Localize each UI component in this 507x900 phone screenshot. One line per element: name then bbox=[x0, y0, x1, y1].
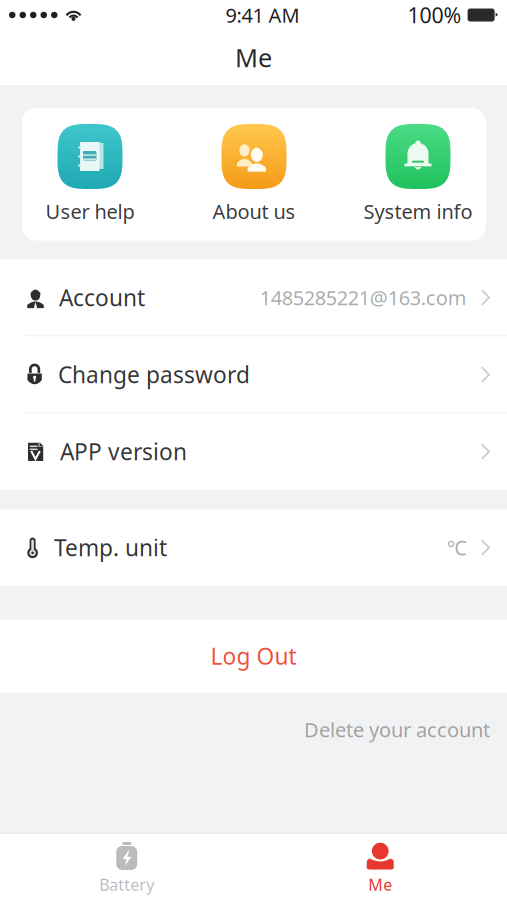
staticText: 9:41 AM bbox=[225, 2, 299, 28]
button[interactable]: APP version bbox=[0, 414, 507, 490]
staticText: Delete your account bbox=[304, 716, 490, 743]
staticText: ℃ bbox=[447, 534, 467, 561]
button[interactable]: About us bbox=[186, 124, 322, 225]
staticText: Me bbox=[368, 874, 392, 895]
button[interactable]: Delete your account bbox=[0, 693, 507, 767]
staticText: 100% bbox=[408, 1, 462, 29]
button[interactable]: User help bbox=[22, 124, 158, 225]
staticText: About us bbox=[212, 198, 295, 225]
staticText: Battery bbox=[99, 874, 154, 895]
button[interactable]: Battery bbox=[0, 834, 253, 900]
button[interactable]: Me bbox=[253, 834, 507, 900]
staticText: APP version bbox=[60, 436, 187, 467]
staticText: User help bbox=[45, 198, 134, 225]
button[interactable]: Log Out bbox=[0, 620, 507, 693]
button[interactable]: System info bbox=[350, 124, 486, 225]
staticText: Me bbox=[235, 41, 272, 74]
staticText: System info bbox=[363, 198, 472, 225]
staticText: Log Out bbox=[210, 641, 296, 671]
button[interactable]: Change password bbox=[0, 337, 507, 413]
button[interactable]: Temp. unit bbox=[0, 510, 507, 586]
staticText: Temp. unit bbox=[54, 532, 167, 563]
staticText: Account bbox=[59, 282, 145, 313]
button[interactable]: Account bbox=[0, 260, 507, 336]
staticText: 1485285221@163.com bbox=[260, 284, 467, 311]
staticText: Change password bbox=[58, 359, 250, 390]
